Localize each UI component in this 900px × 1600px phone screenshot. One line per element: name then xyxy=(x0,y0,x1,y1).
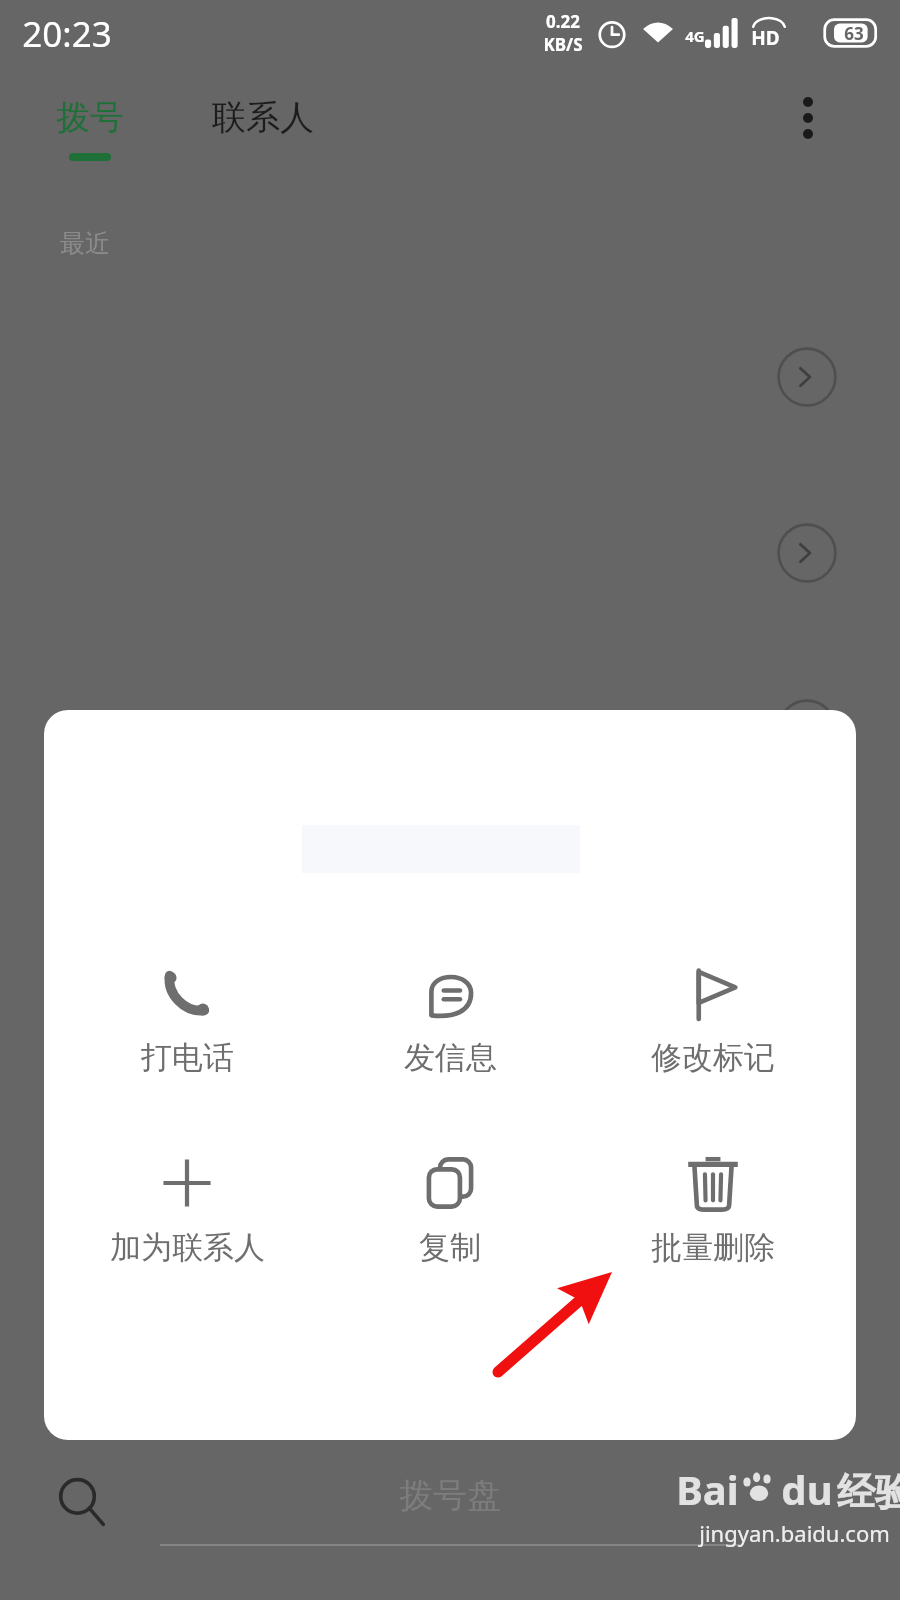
staticText: 0.22 xyxy=(546,10,580,33)
staticText: 经验 xyxy=(837,1468,900,1516)
staticText: 加为联系人 xyxy=(110,1228,265,1267)
button[interactable]: 打电话 xyxy=(67,956,307,1083)
staticText: du xyxy=(781,1462,833,1516)
staticText: KB/S xyxy=(543,33,583,56)
staticText: Bai xyxy=(676,1462,739,1516)
button[interactable]: 修改标记 xyxy=(593,956,833,1083)
button[interactable]: Call details xyxy=(776,698,838,760)
staticText: 复制 xyxy=(419,1228,481,1267)
staticText: 修改标记 xyxy=(651,1038,775,1077)
staticText: 批量删除 xyxy=(651,1228,775,1267)
button[interactable]: Call details xyxy=(776,346,838,408)
button[interactable]: Call details xyxy=(776,522,838,584)
staticText: 20:23 xyxy=(22,10,112,58)
button[interactable]: Search xyxy=(46,1466,118,1538)
staticText: jingyan.baidu.com xyxy=(699,1518,890,1548)
staticText: 4G xyxy=(685,26,705,46)
button[interactable]: 加为联系人 xyxy=(67,1146,307,1273)
staticText: 发信息 xyxy=(404,1038,497,1077)
staticText: 拨号盘 xyxy=(399,1474,501,1517)
staticText: 打电话 xyxy=(141,1038,234,1077)
staticText: 联系人 xyxy=(212,96,314,139)
staticText: 最近 xyxy=(60,228,110,259)
button[interactable]: More options xyxy=(776,86,840,150)
button[interactable]: 复制 xyxy=(330,1146,570,1273)
staticText: 拨号 xyxy=(56,96,124,139)
button[interactable]: 发信息 xyxy=(330,956,570,1083)
staticText: HD xyxy=(751,25,780,51)
button[interactable]: 批量删除 xyxy=(593,1146,833,1273)
staticText: 63 xyxy=(844,22,864,45)
